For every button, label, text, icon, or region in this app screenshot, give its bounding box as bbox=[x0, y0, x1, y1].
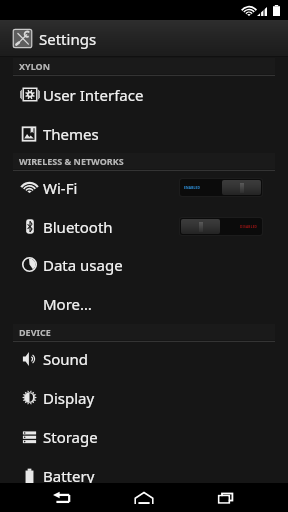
staticText: DISABLED bbox=[240, 225, 258, 229]
staticText: User Interface bbox=[43, 85, 144, 105]
button[interactable]: User Interface bbox=[0, 75, 288, 114]
staticText: WIRELESS & NETWORKS bbox=[19, 155, 124, 167]
button[interactable]: Display bbox=[0, 378, 288, 417]
staticText: Wi-Fi bbox=[43, 178, 78, 198]
staticText: XYLON bbox=[19, 60, 50, 72]
staticText: Battery bbox=[43, 466, 95, 486]
button[interactable]: Recents bbox=[185, 483, 267, 512]
button[interactable]: Storage bbox=[0, 417, 288, 456]
button[interactable]: Sound bbox=[0, 339, 288, 378]
button[interactable]: Bluetooth bbox=[0, 207, 288, 246]
button[interactable]: Wi-Fi bbox=[0, 168, 288, 207]
staticText: More… bbox=[43, 294, 92, 314]
button[interactable]: More… bbox=[0, 284, 288, 323]
staticText: DEVICE bbox=[19, 326, 51, 338]
staticText: Themes bbox=[43, 124, 99, 144]
staticText: Data usage bbox=[43, 255, 123, 275]
button[interactable]: Data usage bbox=[0, 245, 288, 284]
button[interactable]: ENABLED bbox=[180, 179, 262, 196]
button[interactable]: Back bbox=[21, 483, 103, 512]
staticText: Bluetooth bbox=[43, 217, 113, 237]
button[interactable]: Themes bbox=[0, 114, 288, 153]
staticText: Display bbox=[43, 388, 95, 408]
staticText: Storage bbox=[43, 427, 98, 447]
button[interactable]: Battery bbox=[0, 456, 288, 495]
button[interactable]: Home bbox=[103, 483, 185, 512]
staticText: ENABLED bbox=[184, 186, 201, 190]
button[interactable]: DISABLED bbox=[180, 218, 262, 235]
staticText: Settings bbox=[39, 29, 97, 49]
staticText: Sound bbox=[43, 349, 89, 369]
